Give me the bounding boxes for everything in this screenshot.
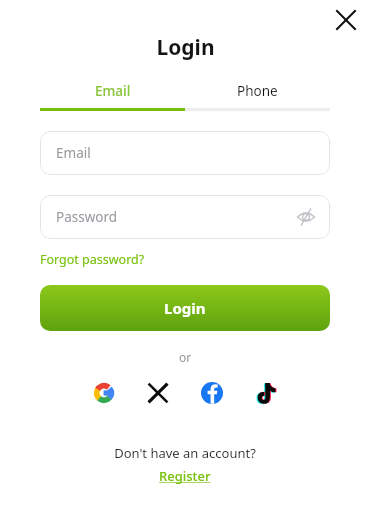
staticText: Login — [164, 298, 206, 318]
button[interactable]: Close — [330, 4, 362, 36]
button[interactable]: Sign in with TikTok — [251, 378, 281, 408]
button[interactable]: Phone — [185, 82, 330, 111]
button[interactable]: Register — [159, 467, 211, 485]
button[interactable]: Email — [40, 131, 330, 175]
button[interactable]: Sign in with X — [143, 378, 173, 408]
button[interactable]: Show password — [294, 205, 318, 229]
staticText: Phone — [237, 82, 278, 100]
button[interactable]: Sign in with Facebook — [197, 378, 227, 408]
button[interactable]: Forgot password? — [40, 251, 145, 268]
staticText: or — [179, 349, 192, 365]
staticText: Email — [95, 82, 131, 100]
button[interactable]: Email — [40, 82, 185, 111]
staticText: Password — [56, 208, 118, 226]
staticText: Don't have an account? — [114, 444, 256, 462]
staticText: Email — [56, 144, 91, 162]
staticText: Forgot password? — [40, 251, 145, 268]
button[interactable]: Password — [40, 195, 330, 239]
staticText: Login — [156, 33, 215, 62]
staticText: Register — [159, 467, 211, 485]
button[interactable]: Login — [40, 285, 330, 331]
button[interactable]: Sign in with Google — [89, 378, 119, 408]
